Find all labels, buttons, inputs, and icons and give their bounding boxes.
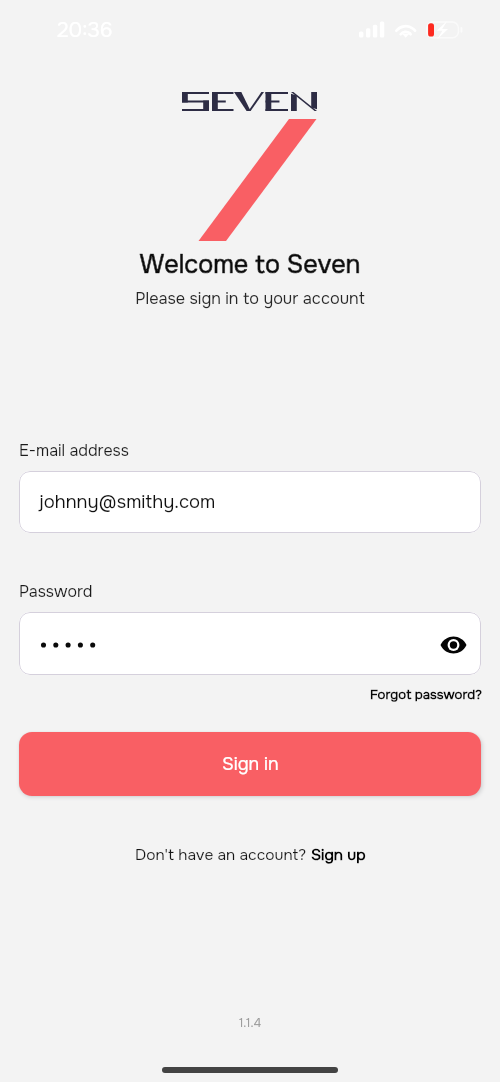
staticText: Welcome to Seven bbox=[0, 249, 500, 281]
other: Show password bbox=[440, 636, 467, 654]
button[interactable]: Forgot password? bbox=[370, 686, 482, 703]
staticText: johnny@smithy.com bbox=[39, 490, 216, 514]
staticText: Forgot password? bbox=[370, 686, 482, 703]
button[interactable]: johnny@smithy.com bbox=[19, 471, 481, 533]
staticText: Sign up bbox=[311, 845, 366, 865]
staticText: E-mail address bbox=[19, 440, 129, 460]
staticText: Please sign in to your account bbox=[0, 288, 500, 309]
button[interactable]: Show password bbox=[19, 612, 481, 675]
button[interactable]: Sign in bbox=[19, 732, 481, 796]
staticText: Welcome to Seven bbox=[0, 249, 500, 281]
staticText: 1.1.4 bbox=[0, 1015, 500, 1030]
staticText: Password bbox=[19, 581, 93, 601]
button[interactable]: Sign up bbox=[311, 845, 366, 865]
staticText: 20:36 bbox=[57, 17, 113, 43]
staticText: Sign in bbox=[222, 753, 279, 776]
staticText: Don't have an account? bbox=[135, 845, 311, 865]
